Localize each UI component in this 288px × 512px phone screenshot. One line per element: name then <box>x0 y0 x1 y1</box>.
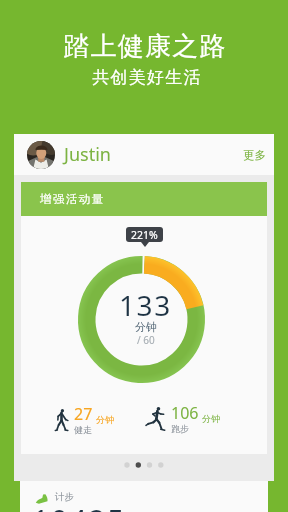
staticText: 跑步 <box>171 423 189 434</box>
staticText: 健走 <box>74 424 92 435</box>
button[interactable]: 106 <box>146 407 220 440</box>
staticText: 踏上健康之路 <box>63 30 227 63</box>
staticText: 10425 <box>32 500 126 512</box>
button[interactable]: 增强活动量 <box>21 182 267 216</box>
staticText: / 60 <box>137 333 155 347</box>
staticText: Justin <box>64 142 111 167</box>
staticText: 分钟 <box>96 414 114 425</box>
staticText: 106 <box>171 402 199 424</box>
staticText: 共创美好生活 <box>92 67 202 88</box>
button[interactable]: Justin <box>14 134 274 175</box>
staticText: 分钟 <box>135 320 157 334</box>
button[interactable]: 27 <box>55 408 114 441</box>
button[interactable]: 计步 <box>35 492 74 504</box>
staticText: 221% <box>131 228 158 242</box>
staticText: 增强活动量 <box>39 192 104 206</box>
staticText: 计步 <box>55 491 74 503</box>
staticText: 133 <box>119 286 172 324</box>
staticText: 分钟 <box>202 413 220 424</box>
staticText: 更多 <box>243 148 266 162</box>
staticText: 27 <box>74 403 93 425</box>
